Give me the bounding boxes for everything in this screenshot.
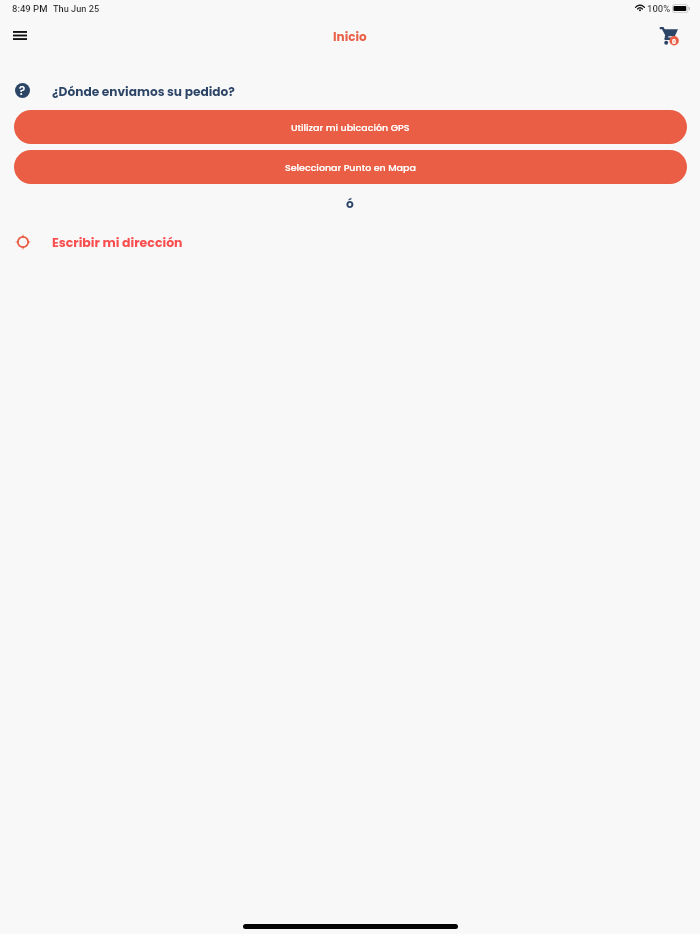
staticText: Escribir mi dirección bbox=[52, 234, 183, 251]
staticText: Inicio bbox=[333, 28, 367, 45]
button[interactable]: Shopping cart, 0 items bbox=[651, 18, 687, 54]
button[interactable]: Open navigation menu bbox=[3, 19, 36, 52]
staticText: Thu Jun 25 bbox=[53, 3, 100, 14]
staticText: Seleccionar Punto en Mapa bbox=[285, 161, 416, 174]
staticText: 0 bbox=[672, 38, 676, 46]
staticText: 100% bbox=[647, 3, 671, 14]
button[interactable]: Escribir mi dirección bbox=[0, 230, 700, 255]
button[interactable]: Utilizar mi ubicación GPS bbox=[14, 110, 687, 144]
button[interactable]: Seleccionar Punto en Mapa bbox=[14, 150, 687, 184]
staticText: 8:49 PM bbox=[12, 3, 48, 14]
staticText: ó bbox=[0, 195, 700, 212]
staticText: ¿Dónde enviamos su pedido? bbox=[52, 83, 235, 100]
staticText: Utilizar mi ubicación GPS bbox=[291, 121, 410, 134]
staticText: ? bbox=[19, 83, 26, 98]
